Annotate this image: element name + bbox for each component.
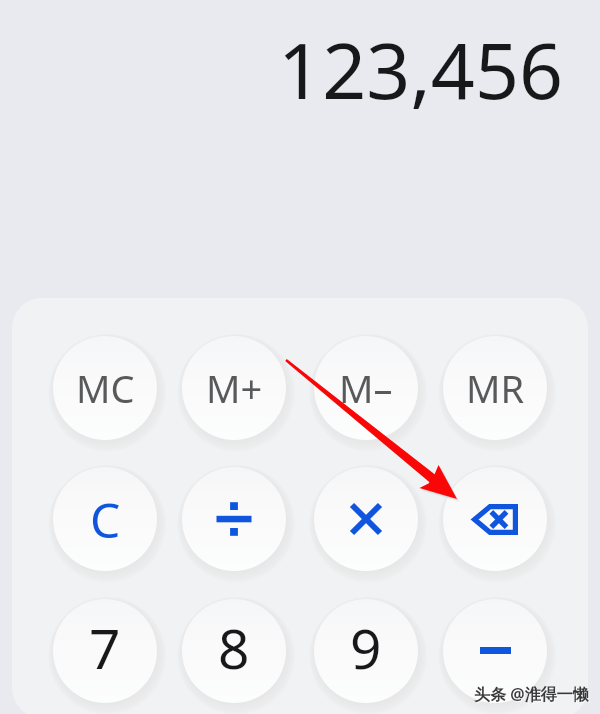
staticText: MC xyxy=(76,362,135,414)
button[interactable]: Backspace xyxy=(443,467,547,571)
staticText: MR xyxy=(466,362,525,414)
staticText: 头条 @淮得一懒 xyxy=(475,684,590,706)
button[interactable]: Divide xyxy=(182,467,286,571)
button[interactable]: MC xyxy=(53,336,157,440)
staticText: M+ xyxy=(206,362,263,414)
staticText: 9 xyxy=(350,610,382,685)
staticText: C xyxy=(90,487,121,552)
staticText: 头条 @淮得一懒 xyxy=(474,683,589,705)
button[interactable]: 7 xyxy=(53,599,157,703)
button[interactable]: M+ xyxy=(182,336,286,440)
staticText: 7 xyxy=(89,610,121,685)
staticText: M– xyxy=(339,362,393,414)
button[interactable]: Minus xyxy=(443,599,547,703)
button[interactable]: 8 xyxy=(182,599,286,703)
button[interactable]: Multiply xyxy=(314,467,418,571)
staticText: 123,456 xyxy=(278,17,563,122)
staticText: 8 xyxy=(218,610,250,685)
button[interactable]: M– xyxy=(314,336,418,440)
button[interactable]: C xyxy=(53,467,157,571)
button[interactable]: 9 xyxy=(314,599,418,703)
button[interactable]: MR xyxy=(443,336,547,440)
